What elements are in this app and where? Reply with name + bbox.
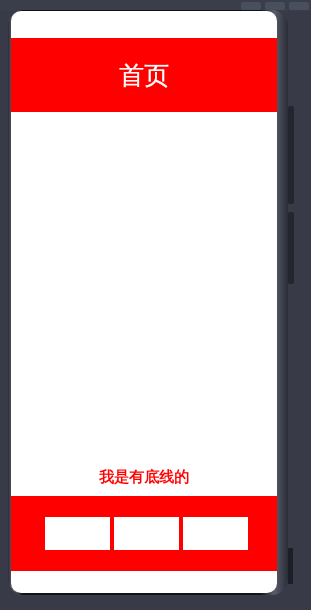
button[interactable]: Home: [44, 516, 111, 551]
button[interactable]: 首页: [11, 38, 277, 112]
staticText: 我是有底线的: [99, 468, 189, 487]
button[interactable]: Categories: [113, 516, 180, 551]
staticText: 首页: [119, 60, 169, 91]
button[interactable]: Profile: [182, 516, 249, 551]
